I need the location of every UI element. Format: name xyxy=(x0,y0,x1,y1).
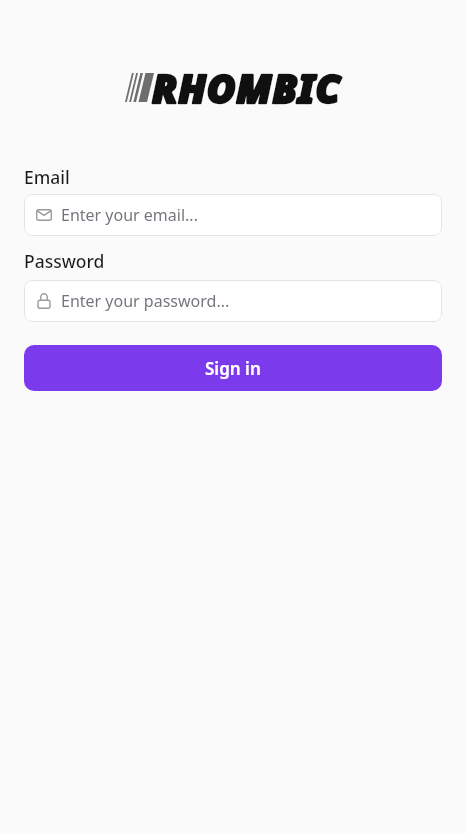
staticText: Email xyxy=(24,165,70,189)
staticText: Sign in xyxy=(205,357,261,380)
staticText: RHOMBIC xyxy=(152,61,341,114)
staticText: Enter your password... xyxy=(61,290,230,312)
staticText: Enter your email... xyxy=(61,204,198,226)
staticText: RHOMBIC xyxy=(152,61,341,114)
button[interactable]: Enter your password... xyxy=(24,280,442,322)
staticText: Password xyxy=(24,249,105,273)
button[interactable]: Sign in xyxy=(24,345,442,391)
button[interactable]: Enter your email... xyxy=(24,194,442,236)
